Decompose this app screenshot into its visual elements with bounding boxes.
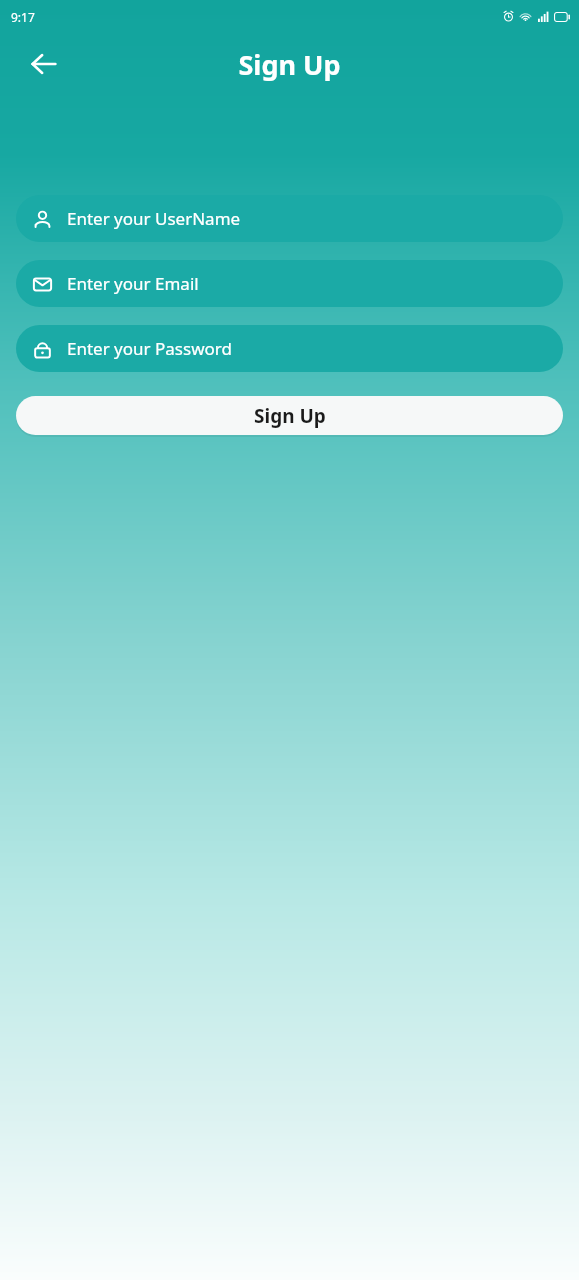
- button[interactable]: Sign Up: [16, 396, 563, 435]
- button[interactable]: Enter your UserName: [16, 195, 563, 242]
- staticText: Enter your Password: [67, 337, 232, 360]
- staticText: Enter your Email: [67, 272, 199, 295]
- button[interactable]: Enter your Password: [16, 325, 563, 372]
- button[interactable]: Back: [18, 38, 70, 90]
- staticText: 9:17: [11, 9, 35, 25]
- button[interactable]: Enter your Email: [16, 260, 563, 307]
- staticText: Sign Up: [238, 46, 341, 83]
- staticText: Enter your UserName: [67, 207, 241, 230]
- staticText: Sign Up: [254, 403, 326, 429]
